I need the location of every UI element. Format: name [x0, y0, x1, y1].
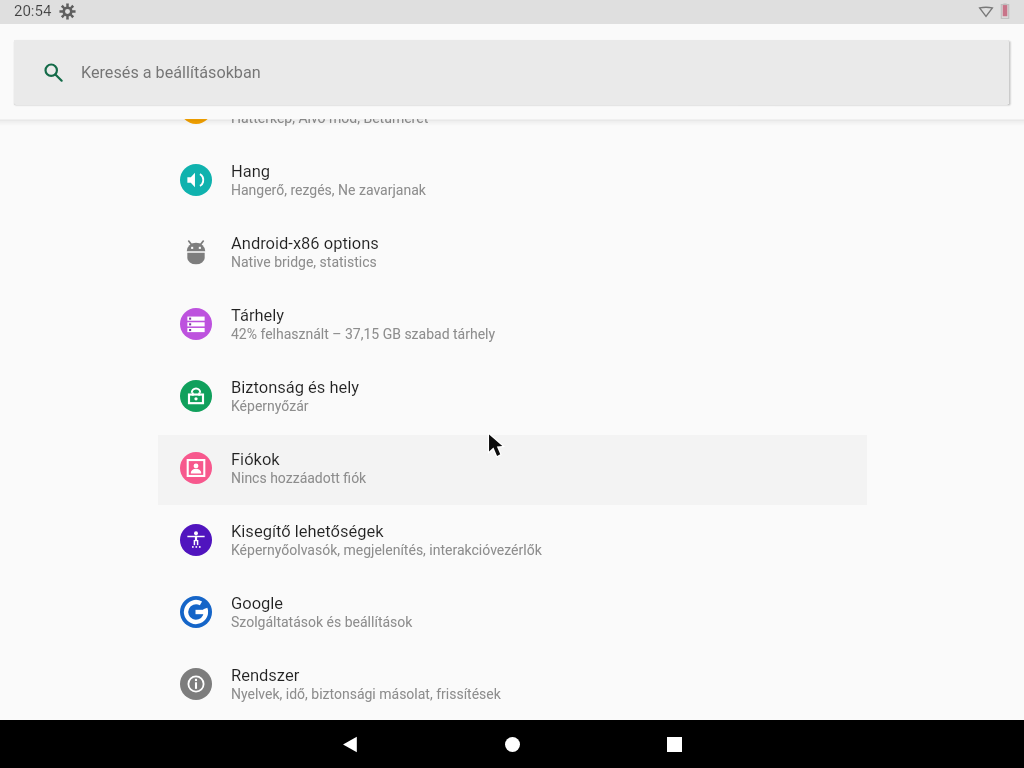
staticText: Native bridge, statistics — [231, 254, 377, 270]
staticText: Hangerő, rezgés, Ne zavarjanak — [231, 182, 426, 198]
button[interactable]: Képernyő — [0, 119, 1024, 144]
staticText: Tárhely — [231, 306, 285, 325]
button[interactable]: Rendszer — [0, 648, 1024, 720]
staticText: Kisegítő lehetőségek — [231, 522, 384, 541]
button[interactable]: Tárhely — [0, 288, 1024, 360]
staticText: Biztonság és hely — [231, 378, 360, 397]
button[interactable]: Keresés a beállításokban — [14, 40, 1009, 105]
staticText: Android-x86 options — [231, 234, 379, 253]
button[interactable]: Home — [464, 720, 560, 768]
staticText: 42% felhasznált – 37,15 GB szabad tárhel… — [231, 326, 496, 342]
staticText: Szolgáltatások és beállítások — [231, 614, 413, 630]
staticText: Hang — [231, 162, 271, 181]
button[interactable]: Google — [0, 576, 1024, 648]
staticText: Google — [231, 594, 284, 613]
button[interactable]: Biztonság és hely — [0, 360, 1024, 432]
button[interactable]: Android-x86 options — [0, 216, 1024, 288]
button[interactable]: Back — [301, 720, 397, 768]
staticText: Nyelvek, idő, biztonsági másolat, frissí… — [231, 686, 501, 702]
staticText: Rendszer — [231, 666, 300, 685]
staticText: 20:54 — [14, 2, 52, 20]
staticText: Nincs hozzáadott fiók — [231, 470, 367, 486]
staticText: Keresés a beállításokban — [81, 63, 261, 82]
staticText: Fiókok — [231, 450, 280, 469]
staticText: Háttérkép, Alvó mód, Betűméret — [231, 119, 429, 126]
button[interactable]: Recents — [626, 720, 722, 768]
staticText: Képernyőzár — [231, 398, 309, 414]
staticText: Képernyőolvasók, megjelenítés, interakci… — [231, 542, 542, 558]
button[interactable]: Fiókok — [0, 432, 1024, 504]
button[interactable]: Hang — [0, 144, 1024, 216]
button[interactable]: Kisegítő lehetőségek — [0, 504, 1024, 576]
